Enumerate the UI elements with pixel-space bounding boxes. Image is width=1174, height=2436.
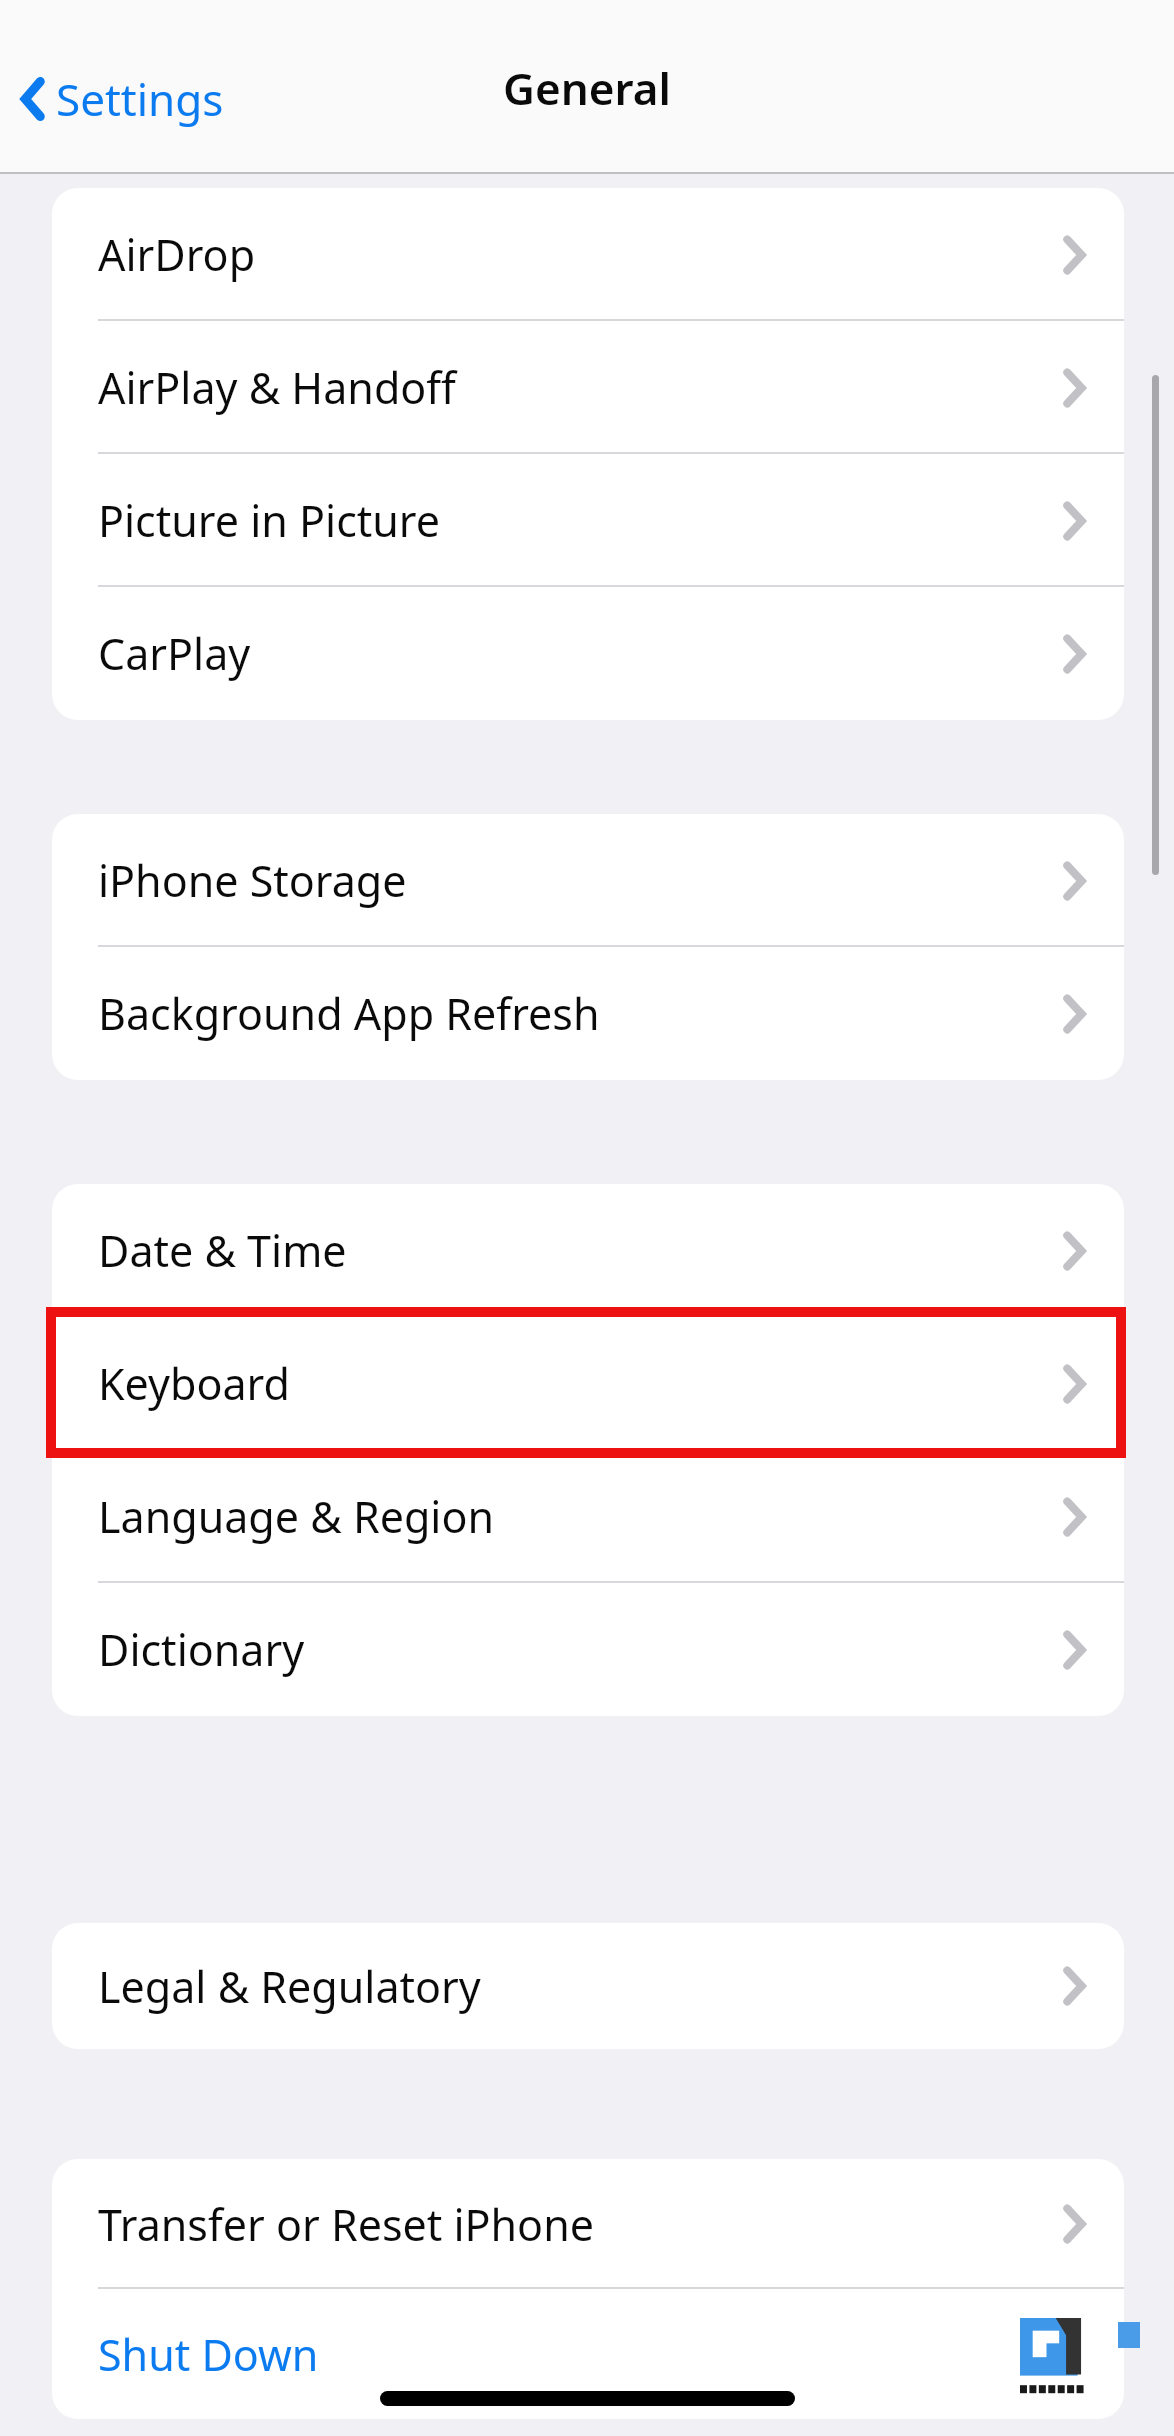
staticText: AirPlay & Handoff [98,358,456,417]
button[interactable]: Dictionary [52,1583,1124,1716]
button[interactable]: Transfer or Reset iPhone [52,2159,1124,2289]
staticText: AirDrop [98,225,256,284]
button[interactable]: Shut Down [52,2289,1124,2419]
staticText: Settings [56,69,224,129]
other: Gadgets To Use watermark [1020,2318,1102,2398]
staticText: Keyboard [98,1354,290,1413]
staticText: iPhone Storage [98,851,407,910]
staticText: Transfer or Reset iPhone [98,2195,594,2254]
staticText: Language & Region [98,1487,495,1546]
button[interactable]: Keyboard [52,1317,1124,1450]
button[interactable]: Background App Refresh [52,947,1124,1080]
staticText: Background App Refresh [98,984,600,1043]
staticText: Picture in Picture [98,491,441,550]
staticText: Legal & Regulatory [98,1957,481,2016]
button[interactable]: Language & Region [52,1450,1124,1583]
staticText: General [503,58,671,118]
staticText: Dictionary [98,1620,305,1679]
button[interactable]: Date & Time [52,1184,1124,1317]
button[interactable]: Settings [0,61,238,137]
staticText: Date & Time [98,1221,347,1280]
button[interactable]: iPhone Storage [52,814,1124,947]
staticText: CarPlay [98,624,251,683]
button[interactable]: AirDrop [52,188,1124,321]
button[interactable]: Picture in Picture [52,454,1124,587]
button[interactable]: AirPlay & Handoff [52,321,1124,454]
button[interactable]: Legal & Regulatory [52,1923,1124,2049]
staticText: Shut Down [98,2325,319,2384]
button[interactable]: CarPlay [52,587,1124,720]
